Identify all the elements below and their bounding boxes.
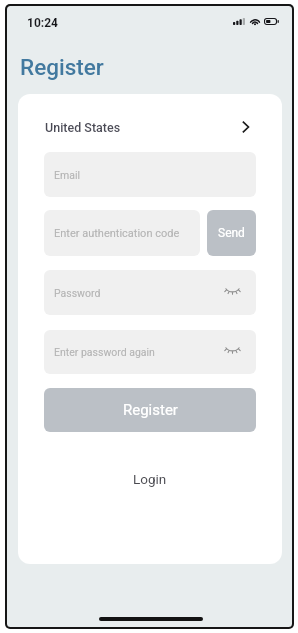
button[interactable]: Show password xyxy=(223,284,241,298)
button[interactable]: Password xyxy=(44,270,256,315)
staticText: Enter authentication code xyxy=(54,227,180,240)
staticText: Register xyxy=(20,54,104,80)
button[interactable]: Email xyxy=(44,152,256,197)
button[interactable]: Enter authentication code xyxy=(44,210,200,256)
staticText: Email xyxy=(54,169,80,181)
button[interactable]: Enter password again xyxy=(44,330,256,374)
button[interactable]: Show password xyxy=(223,343,241,357)
staticText: Password xyxy=(54,287,101,299)
button[interactable]: Send xyxy=(207,210,256,256)
staticText: 10:24 xyxy=(27,16,58,30)
staticText: Enter password again xyxy=(54,346,155,358)
staticText: Register xyxy=(123,401,178,419)
button[interactable]: Login xyxy=(125,469,175,489)
staticText: Login xyxy=(133,471,167,487)
button[interactable]: Register xyxy=(44,388,256,432)
staticText: United States xyxy=(45,120,121,135)
staticText: Send xyxy=(218,226,245,240)
other: Select country xyxy=(236,118,254,136)
button[interactable]: United States xyxy=(45,114,254,140)
